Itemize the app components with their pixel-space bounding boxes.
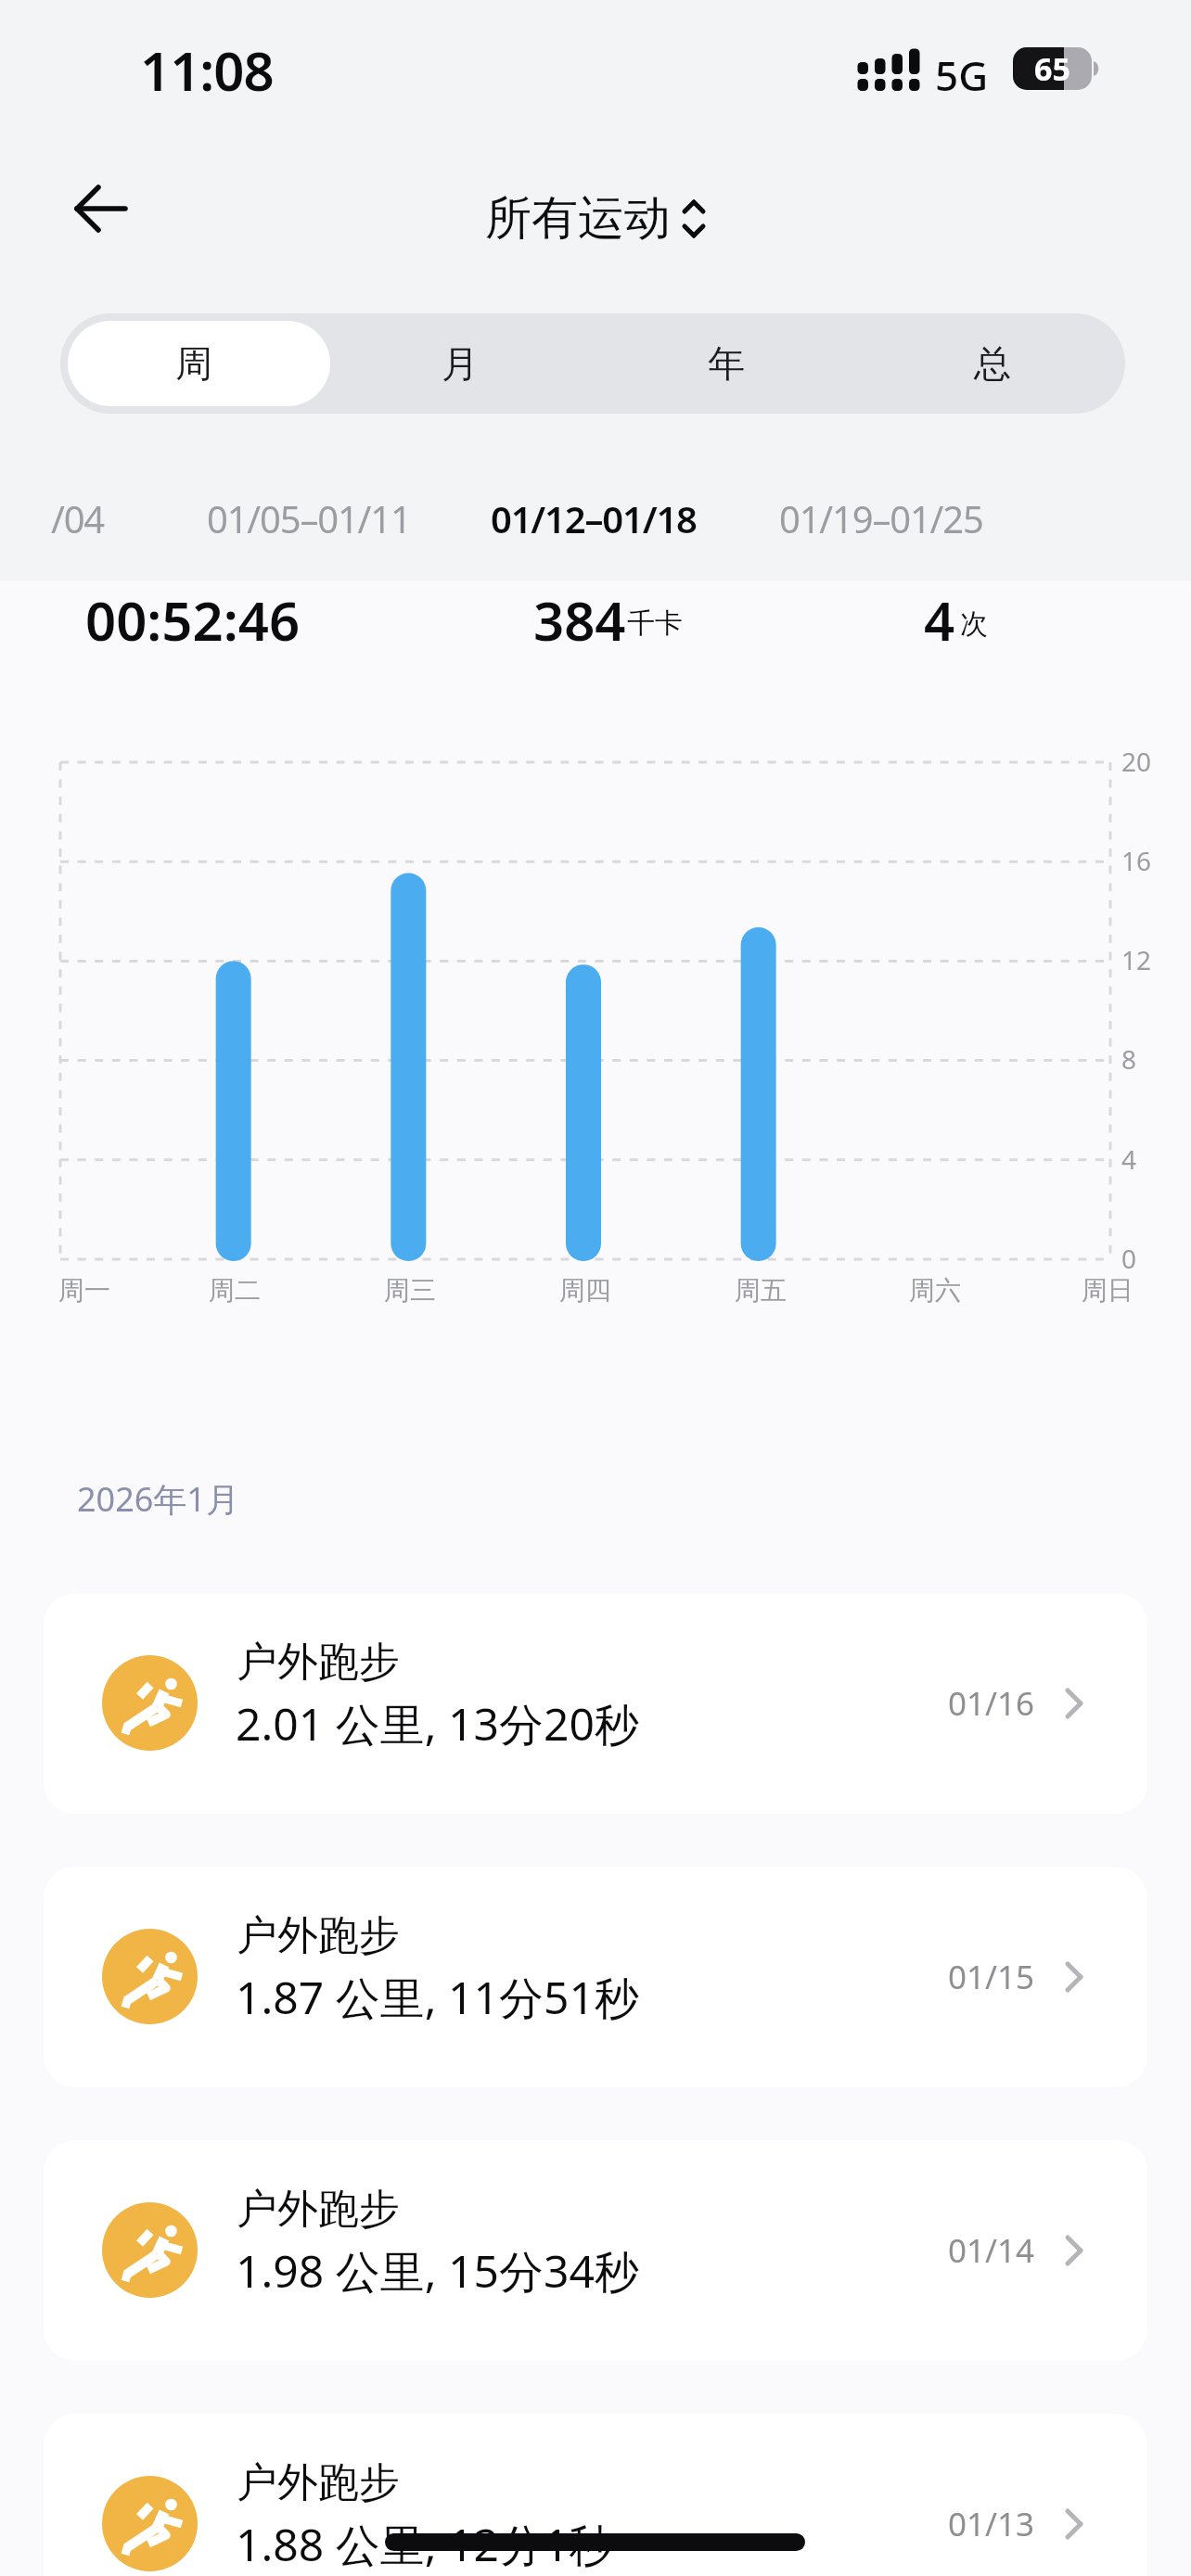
staticText: 户外跑步 [237, 1637, 400, 1688]
staticText: 周 [175, 340, 212, 387]
staticText: 20 [1121, 744, 1152, 779]
button[interactable]: 户外跑步 [44, 2414, 1147, 2576]
button[interactable]: 月 [327, 313, 593, 414]
staticText: 16 [1121, 843, 1152, 878]
staticText: 周六 [909, 1274, 961, 1307]
staticText: 00:52:46 [85, 583, 301, 657]
staticText: 1.88 公里, 12分1秒 [236, 2514, 614, 2575]
staticText: 1.87 公里, 11分51秒 [236, 1967, 639, 2028]
staticText: 8 [1121, 1041, 1137, 1077]
staticText: 5G [935, 47, 989, 103]
staticText: 周一 [58, 1274, 110, 1307]
staticText: 周三 [384, 1274, 436, 1307]
staticText: 户外跑步 [237, 2184, 400, 2235]
staticText: 年 [708, 340, 745, 387]
staticText: 周日 [1082, 1274, 1133, 1307]
staticText: 65 [1034, 47, 1070, 90]
staticText: 周四 [559, 1274, 611, 1307]
button[interactable]: 年 [593, 313, 859, 414]
staticText: 01/15 [948, 1955, 1035, 1999]
staticText: 1.98 公里, 15分34秒 [236, 2240, 639, 2302]
staticText: 次 [960, 606, 988, 642]
staticText: /04 [51, 493, 105, 543]
staticText: 01/19–01/25 [779, 493, 983, 543]
staticText: 周二 [209, 1274, 261, 1307]
button[interactable]: 户外跑步 [44, 1867, 1147, 2087]
staticText: 01/05–01/11 [207, 493, 411, 543]
staticText: 总 [974, 340, 1011, 387]
staticText: 01/16 [948, 1681, 1035, 1726]
staticText: 12 [1121, 942, 1152, 977]
staticText: 所有运动 [485, 189, 671, 248]
staticText: 01/12–01/18 [491, 493, 697, 543]
staticText: 384 [533, 583, 626, 657]
button[interactable]: 01/05–01/11 [170, 493, 448, 543]
staticText: 户外跑步 [237, 2457, 400, 2508]
button[interactable]: 01/12–01/18 [455, 493, 733, 543]
button[interactable]: 总 [859, 313, 1125, 414]
staticText: 千卡 [627, 606, 683, 641]
staticText: 11:08 [140, 33, 274, 107]
staticText: 周五 [735, 1274, 787, 1307]
staticText: 4 [924, 583, 955, 657]
button[interactable]: 01/19–01/25 [742, 493, 1020, 543]
button[interactable]: 户外跑步 [44, 1593, 1147, 1814]
staticText: 01/14 [948, 2228, 1035, 2273]
staticText: 户外跑步 [237, 1910, 400, 1961]
staticText: 月 [442, 340, 479, 387]
staticText: 0 [1121, 1241, 1137, 1276]
staticText: 01/13 [948, 2502, 1035, 2546]
button[interactable] [59, 167, 143, 250]
button[interactable]: 所有运动 [485, 189, 706, 248]
staticText: 2026年1月 [77, 1476, 239, 1522]
staticText: 2.01 公里, 13分20秒 [236, 1693, 639, 1754]
staticText: 4 [1121, 1141, 1137, 1177]
button[interactable]: 户外跑步 [44, 2140, 1147, 2361]
button[interactable]: 周 [60, 313, 327, 414]
